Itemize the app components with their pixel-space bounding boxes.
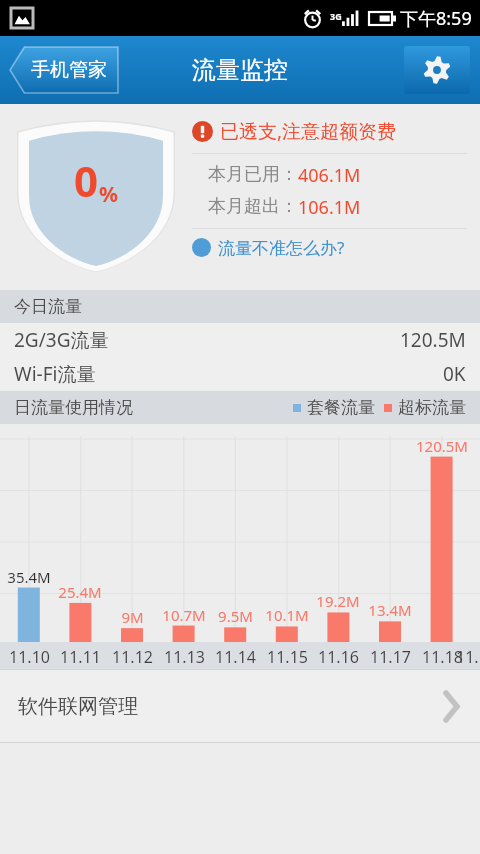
staticText: 11.11 (60, 646, 101, 668)
staticText: 120.5M (416, 436, 468, 456)
staticText: 0 (74, 152, 99, 209)
staticText: 11.16 (318, 646, 359, 668)
staticText: 11.18 (422, 646, 463, 668)
staticText: Wi-Fi流量 (14, 361, 96, 387)
staticText: 下午8:59 (400, 6, 472, 31)
staticText: 10.7M (162, 605, 206, 625)
staticText: 流量不准怎么办? (218, 236, 345, 259)
staticText: 13.4M (368, 600, 412, 620)
staticText: 11.10 (9, 646, 50, 668)
staticText: 超标流量 (398, 397, 466, 418)
staticText: 120.5M (400, 327, 466, 353)
staticText: 本月已用： (208, 163, 298, 186)
staticText: 2G/3G流量 (14, 327, 109, 353)
staticText: 106.1M (298, 195, 361, 220)
staticText: % (99, 180, 118, 209)
staticText: 0K (443, 361, 466, 387)
staticText: 19.2M (316, 591, 360, 611)
button[interactable]: 流量不准怎么办? (192, 236, 345, 259)
button[interactable]: 2G/3G流量 (0, 323, 480, 357)
staticText: 11.13 (164, 646, 205, 668)
staticText: 9.5M (218, 606, 253, 626)
staticText: 10.1M (265, 605, 309, 625)
staticText: 406.1M (298, 163, 361, 188)
staticText: 11. (456, 646, 479, 668)
staticText: 套餐流量 (307, 397, 375, 418)
staticText: 11.12 (112, 646, 153, 668)
button[interactable]: 软件联网管理 (0, 670, 480, 742)
button[interactable]: Wi-Fi流量 (0, 357, 480, 391)
staticText: 35.4M (7, 567, 51, 587)
staticText: 9M (121, 607, 144, 627)
staticText: 已透支,注意超额资费 (220, 118, 397, 144)
button[interactable]: 手机管家 (9, 46, 119, 94)
staticText: 手机管家 (31, 58, 107, 82)
staticText: 软件联网管理 (18, 694, 138, 719)
staticText: 流量监控 (192, 55, 288, 85)
staticText: 11.15 (267, 646, 308, 668)
staticText: 本月超出： (208, 195, 298, 218)
staticText: 3G (330, 10, 342, 22)
staticText: 11.17 (370, 646, 411, 668)
staticText: 25.4M (58, 582, 102, 602)
staticText: 日流量使用情况 (14, 397, 133, 418)
staticText: 11.14 (215, 646, 256, 668)
staticText: 今日流量 (14, 296, 82, 317)
button[interactable]: Settings (404, 46, 470, 94)
